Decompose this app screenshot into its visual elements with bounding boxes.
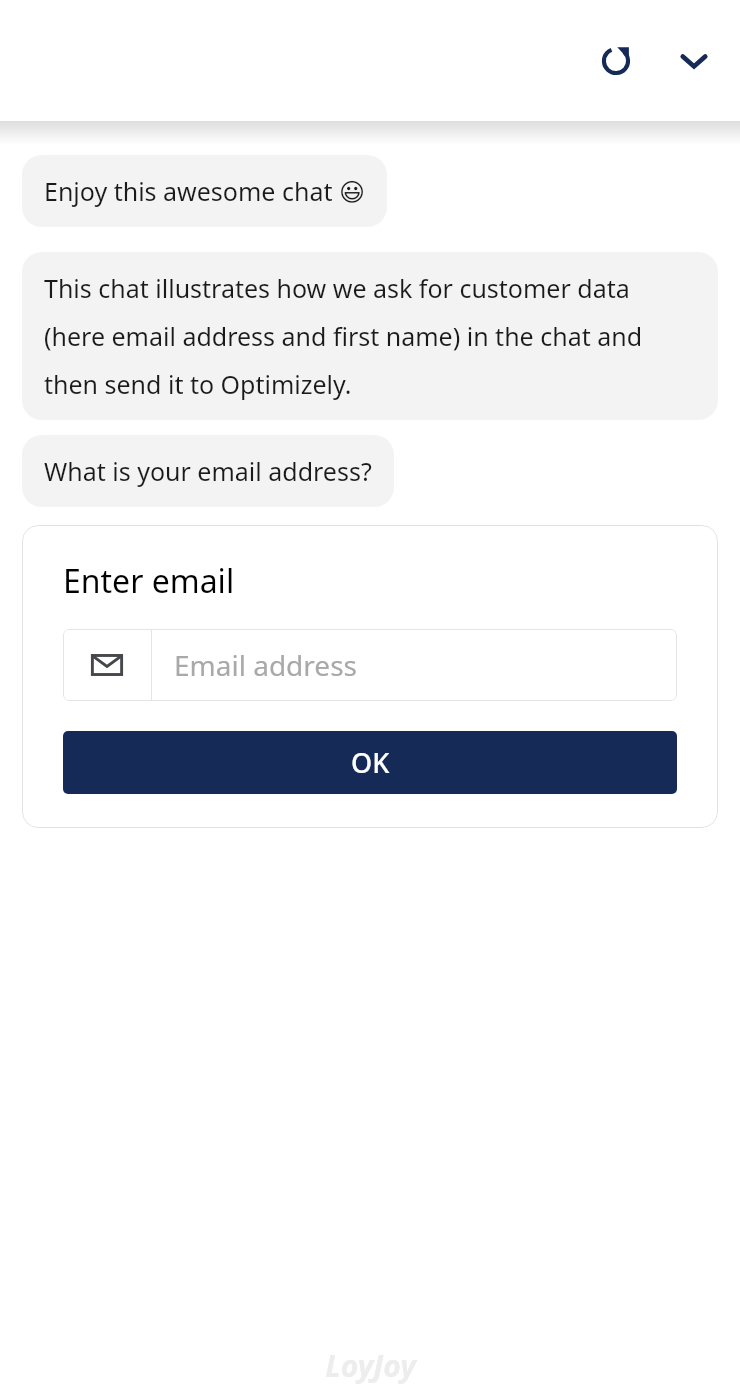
button[interactable]: Refresh [588,33,644,89]
staticText: What is your email address? [44,454,372,488]
button[interactable]: This chat illustrates how we ask for cus… [22,252,718,420]
staticText: LoyJoy [325,1345,416,1386]
button[interactable]: OK [63,731,677,794]
staticText: Enjoy this awesome chat 😃 [44,174,365,208]
staticText: OK [351,744,390,781]
button[interactable]: Enjoy this awesome chat 😃 [22,155,387,227]
button[interactable]: Email address [63,629,677,701]
button[interactable]: Collapse chat [666,33,722,89]
staticText: Email address [174,646,357,684]
staticText: Enter email [63,559,235,603]
staticText: This chat illustrates how we ask for cus… [44,271,696,401]
button[interactable]: What is your email address? [22,435,394,507]
